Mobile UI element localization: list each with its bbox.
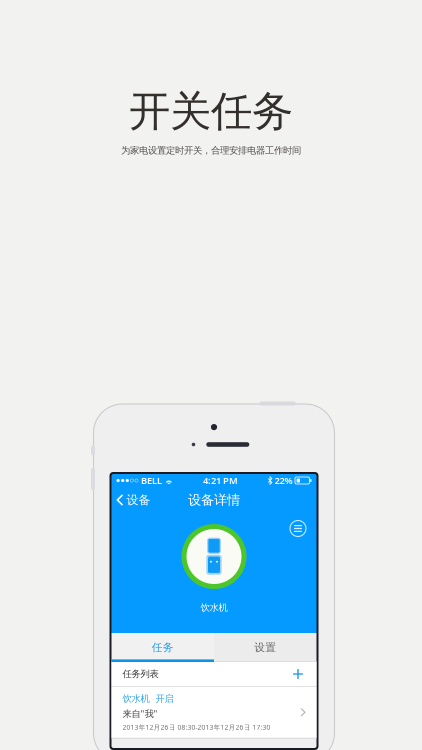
staticText: 22% (274, 474, 292, 487)
staticText: 4:21 PM (203, 474, 238, 487)
staticText: 为家电设置定时开关，合理安排电器工作时间 (121, 145, 301, 156)
staticText: 饮水机 (200, 602, 227, 613)
button[interactable]: 任务列表 (283, 514, 312, 543)
staticText: 开启 (155, 693, 173, 704)
staticText: 任务列表 (122, 668, 158, 680)
staticText: 任务 (152, 641, 174, 654)
button[interactable]: 设备 (111, 489, 155, 511)
staticText: 设置 (254, 641, 276, 654)
button[interactable]: 饮水机 (111, 687, 316, 738)
staticText: 来自"我" (122, 707, 157, 720)
staticText: 设备 (126, 493, 150, 507)
staticText: BELL (141, 474, 162, 487)
staticText: 饮水机 (122, 693, 149, 704)
button[interactable]: 设置 (214, 633, 316, 662)
staticText: 开关任务 (129, 86, 293, 137)
staticText: 2013年12月26日 08:30-2013年12月26日 17:30 (122, 723, 270, 732)
button[interactable]: 任务 (111, 633, 214, 662)
staticText: 设备详情 (188, 492, 240, 508)
button[interactable]: 添加任务 (290, 666, 305, 681)
